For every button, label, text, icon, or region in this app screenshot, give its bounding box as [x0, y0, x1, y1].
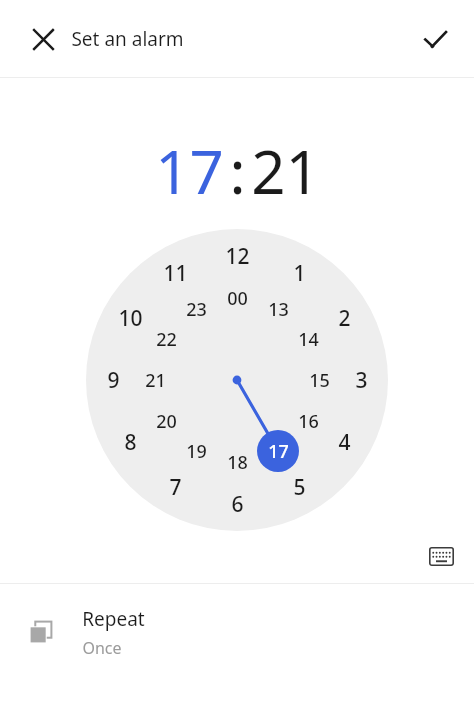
button[interactable]: 21 — [251, 130, 320, 212]
staticText: Repeat — [82, 606, 145, 632]
staticText: 21 — [251, 130, 320, 212]
button[interactable]: 6 — [218, 485, 256, 523]
button[interactable]: Repeat — [0, 584, 474, 680]
button[interactable]: 17 — [155, 130, 224, 212]
staticText: 19 — [186, 439, 207, 464]
button[interactable]: 11 — [156, 254, 194, 292]
button[interactable]: 20 — [147, 402, 185, 440]
staticText: 6 — [231, 490, 244, 519]
staticText: 3 — [355, 366, 368, 395]
staticText: 17 — [155, 130, 224, 212]
staticText: : — [229, 130, 246, 212]
staticText: 2 — [338, 304, 351, 333]
button[interactable]: Clock hour picker — [86, 229, 388, 531]
staticText: 18 — [227, 450, 248, 475]
staticText: 16 — [298, 409, 319, 434]
button[interactable]: 8 — [111, 423, 149, 461]
button[interactable]: 9 — [94, 361, 132, 399]
button[interactable]: 15 — [300, 361, 338, 399]
button[interactable]: Close — [19, 15, 67, 63]
staticText: 10 — [118, 304, 143, 333]
staticText: 15 — [309, 368, 330, 393]
staticText: 1 — [293, 259, 306, 288]
staticText: Set an alarm — [71, 26, 184, 52]
staticText: 20 — [156, 409, 177, 434]
staticText: 4 — [338, 428, 351, 457]
staticText: 21 — [145, 368, 166, 393]
button[interactable]: 13 — [259, 290, 297, 328]
button[interactable]: 12 — [218, 237, 256, 275]
button[interactable]: Switch to text input — [420, 535, 462, 577]
button[interactable]: 10 — [111, 299, 149, 337]
button[interactable]: 23 — [177, 290, 215, 328]
staticText: 9 — [107, 366, 120, 395]
button[interactable]: 7 — [156, 468, 194, 506]
staticText: 00 — [227, 286, 248, 311]
button[interactable]: 18 — [218, 443, 256, 481]
button[interactable]: 00 — [218, 279, 256, 317]
staticText: 13 — [268, 297, 289, 322]
button[interactable]: 4 — [325, 423, 363, 461]
staticText: 7 — [169, 473, 182, 502]
staticText: 8 — [124, 428, 137, 457]
button[interactable]: 17 — [259, 432, 297, 470]
button[interactable]: 16 — [289, 402, 327, 440]
staticText: 23 — [186, 297, 207, 322]
staticText: 11 — [163, 259, 188, 288]
button[interactable]: Done — [411, 15, 459, 63]
staticText: 12 — [225, 242, 250, 271]
button[interactable]: 19 — [177, 432, 215, 470]
button[interactable]: 2 — [325, 299, 363, 337]
button[interactable]: 3 — [342, 361, 380, 399]
button[interactable]: 22 — [147, 320, 185, 358]
button[interactable]: 1 — [280, 254, 318, 292]
button[interactable]: 5 — [280, 468, 318, 506]
staticText: 22 — [156, 327, 177, 352]
button[interactable]: 14 — [289, 320, 327, 358]
staticText: 17 — [268, 439, 289, 464]
staticText: 5 — [293, 473, 306, 502]
button[interactable]: 21 — [136, 361, 174, 399]
staticText: Once — [82, 637, 122, 659]
staticText: 14 — [298, 327, 319, 352]
